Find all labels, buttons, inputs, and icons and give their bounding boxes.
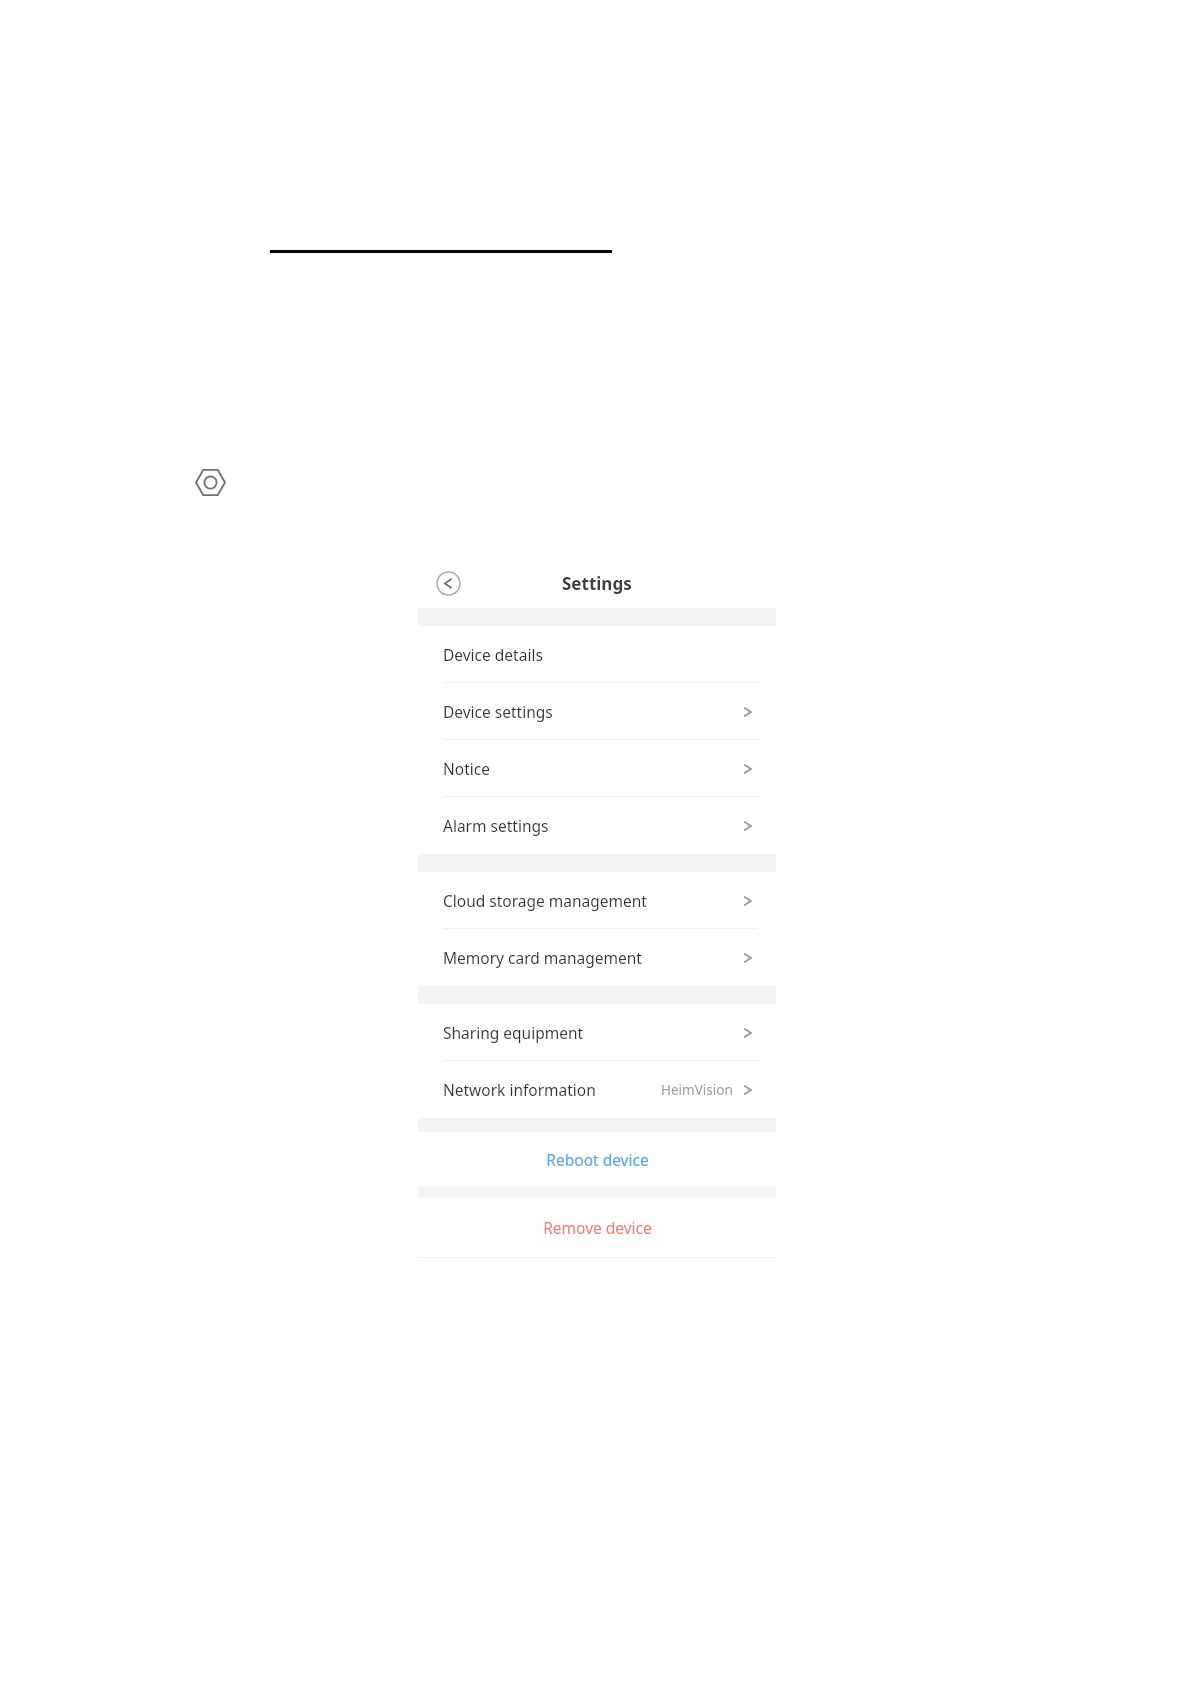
staticText: Alarm settings — [443, 815, 549, 836]
button[interactable]: Device settings — [418, 683, 776, 740]
staticText: Device settings — [443, 701, 553, 722]
button[interactable]: Network information — [418, 1061, 776, 1118]
button[interactable]: Remove device — [418, 1197, 776, 1257]
button[interactable]: Alarm settings — [418, 797, 776, 854]
staticText: Remove device — [543, 1217, 652, 1238]
button[interactable]: Device details — [418, 626, 776, 683]
button[interactable]: Memory card management — [418, 929, 776, 986]
staticText: Sharing equipment — [443, 1022, 584, 1043]
staticText: HeimVision — [661, 1081, 733, 1099]
staticText: Device details — [443, 644, 543, 665]
staticText: Memory card management — [443, 947, 642, 968]
button[interactable]: Cloud storage management — [418, 872, 776, 929]
staticText: Network information — [443, 1079, 596, 1100]
button[interactable]: Notice — [418, 740, 776, 797]
staticText: Cloud storage management — [443, 890, 647, 911]
staticText: Settings — [562, 572, 632, 595]
staticText: Reboot device — [546, 1149, 649, 1170]
button[interactable]: Sharing equipment — [418, 1004, 776, 1061]
staticText: Notice — [443, 758, 490, 779]
button[interactable]: Reboot device — [418, 1132, 776, 1187]
button[interactable]: Back — [430, 565, 466, 601]
